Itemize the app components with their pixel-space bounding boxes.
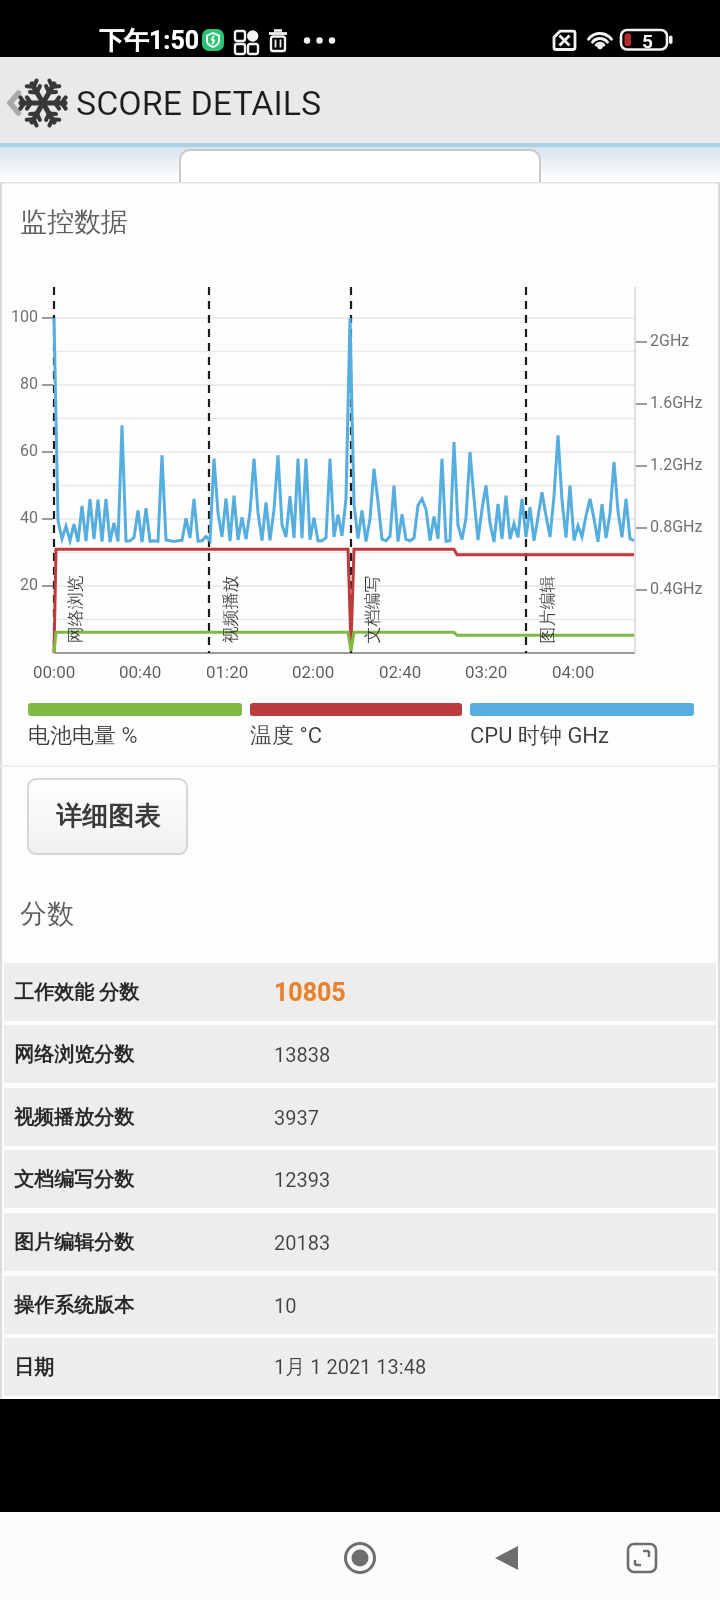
staticText: 网络浏览分数 — [14, 1042, 134, 1067]
staticText: 03:20 — [465, 662, 508, 682]
staticText: 温度 °C — [250, 722, 322, 750]
staticText: 80 — [20, 374, 38, 393]
staticText: 01:20 — [206, 662, 249, 682]
staticText: 04:00 — [552, 662, 595, 682]
staticText: 日期 — [14, 1355, 54, 1380]
staticText: 20183 — [274, 1231, 331, 1254]
staticText: 00:00 — [33, 662, 76, 682]
staticText: 10805 — [274, 978, 346, 1007]
staticText: 文档编写分数 — [14, 1167, 134, 1192]
staticText: 1.2GHz — [650, 455, 703, 474]
staticText: 工作效能 分数 — [14, 980, 139, 1005]
staticText: 10 — [274, 1294, 297, 1317]
staticText: 图片编辑分数 — [14, 1230, 134, 1255]
staticText: 60 — [20, 441, 38, 460]
staticText: 网络浏览 — [64, 575, 85, 643]
staticText: 监控数据 — [20, 205, 128, 239]
staticText: 分数 — [20, 897, 74, 931]
button[interactable]: 网络浏览分数 — [4, 1025, 716, 1083]
button[interactable]: 日期 — [4, 1338, 716, 1396]
staticText: 视频播放 — [219, 575, 240, 643]
button[interactable]: 视频播放分数 — [4, 1088, 716, 1146]
staticText: 0.4GHz — [650, 579, 703, 598]
staticText: 00:40 — [119, 662, 162, 682]
button[interactable]: 详细图表 — [27, 778, 188, 855]
staticText: 3937 — [274, 1106, 319, 1129]
staticText: 电池电量 % — [28, 722, 138, 750]
button[interactable] — [0, 57, 60, 143]
staticText: 0.8GHz — [650, 517, 703, 536]
button[interactable] — [485, 1536, 529, 1580]
staticText: 13838 — [274, 1043, 331, 1066]
staticText: 1.6GHz — [650, 393, 703, 412]
button[interactable] — [620, 1536, 664, 1580]
staticText: 40 — [20, 508, 38, 527]
staticText: 详细图表 — [56, 800, 160, 833]
button[interactable]: 工作效能 分数 — [4, 963, 716, 1021]
staticText: 20 — [20, 575, 38, 594]
staticText: 02:40 — [379, 662, 422, 682]
staticText: CPU 时钟 GHz — [470, 722, 609, 750]
staticText: 2GHz — [650, 331, 690, 350]
staticText: 文档编写 — [361, 575, 382, 643]
staticText: 100 — [11, 307, 38, 326]
button[interactable]: 图片编辑分数 — [4, 1213, 716, 1271]
staticText: 图片编辑 — [536, 575, 557, 643]
staticText: 视频播放分数 — [14, 1105, 134, 1130]
staticText: 1月 1 2021 13:48 — [274, 1355, 427, 1380]
button[interactable] — [338, 1536, 382, 1580]
staticText: 操作系统版本 — [14, 1293, 134, 1318]
staticText: 12393 — [274, 1168, 331, 1191]
button[interactable]: 文档编写分数 — [4, 1150, 716, 1208]
staticText: 5 — [642, 30, 653, 52]
staticText: 下午1:50 — [99, 25, 200, 56]
staticText: 02:00 — [292, 662, 335, 682]
button[interactable]: 操作系统版本 — [4, 1276, 716, 1334]
staticText: SCORE DETAILS — [76, 83, 322, 123]
